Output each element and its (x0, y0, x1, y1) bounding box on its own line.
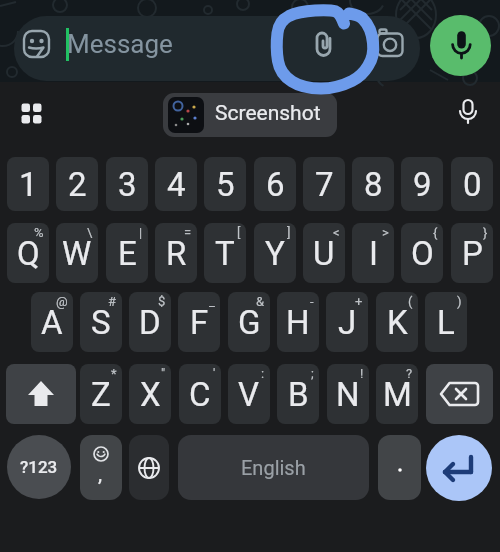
staticText: V (238, 375, 260, 414)
button[interactable]: W (56, 223, 98, 283)
staticText: : (261, 366, 265, 381)
button[interactable]: O (401, 223, 443, 283)
button[interactable]: 1 (7, 157, 49, 211)
staticText: E (118, 234, 137, 273)
button[interactable]: 0 (451, 157, 493, 211)
button[interactable]: V (228, 364, 270, 424)
staticText: X (140, 375, 161, 414)
staticText: U (313, 234, 335, 273)
button[interactable]: T (204, 223, 246, 283)
staticText: 1 (19, 165, 38, 204)
button[interactable] (453, 97, 483, 127)
button[interactable]: 3 (106, 157, 148, 211)
staticText: R (166, 234, 187, 273)
button[interactable] (129, 435, 169, 500)
staticText: 4 (167, 165, 186, 204)
staticText: English (241, 456, 306, 479)
staticText: ?123 (20, 457, 58, 477)
staticText: W (62, 234, 92, 273)
button[interactable]: I (352, 223, 394, 283)
staticText: , (98, 462, 103, 487)
staticText: { (433, 225, 438, 240)
staticText: I (369, 234, 378, 273)
button[interactable]: 4 (155, 157, 197, 211)
button[interactable]: Q (7, 223, 49, 283)
button[interactable]: , (80, 435, 122, 500)
staticText: Q (17, 234, 40, 273)
staticText: _ (209, 294, 215, 309)
staticText: & (256, 294, 265, 309)
staticText: 5 (216, 165, 235, 204)
button[interactable] (16, 98, 46, 128)
staticText: ; (311, 366, 314, 381)
button[interactable]: M (376, 364, 418, 424)
staticText: G (238, 303, 261, 342)
staticText: 8 (364, 165, 383, 204)
button[interactable]: 7 (303, 157, 345, 211)
staticText: Message (67, 29, 173, 59)
button[interactable]: English (178, 435, 369, 500)
button[interactable]: X (129, 364, 171, 424)
button[interactable]: S (80, 292, 122, 352)
button[interactable]: ?123 (7, 435, 71, 499)
button[interactable]: Y (254, 223, 296, 283)
staticText: H (286, 303, 310, 342)
staticText: ' (213, 366, 216, 381)
button[interactable]: H (277, 292, 319, 352)
button[interactable]: P (451, 223, 493, 283)
button[interactable]: L (425, 292, 467, 352)
button[interactable]: G (228, 292, 270, 352)
button[interactable] (426, 435, 492, 501)
staticText: 3 (118, 165, 137, 204)
button[interactable] (430, 15, 491, 76)
button[interactable]: 8 (352, 157, 394, 211)
button[interactable]: 2 (56, 157, 98, 211)
staticText: < (333, 225, 340, 240)
staticText: $ (158, 294, 166, 309)
staticText: 6 (266, 165, 285, 204)
staticText: | (139, 225, 143, 240)
button[interactable]: Z (80, 364, 122, 424)
button[interactable] (14, 16, 420, 81)
staticText: Y (265, 234, 285, 273)
button[interactable] (426, 364, 493, 424)
staticText: * (111, 366, 117, 381)
staticText: = (184, 225, 192, 240)
staticText: Screenshot (215, 101, 321, 126)
staticText: \ (87, 225, 93, 240)
button[interactable] (378, 435, 421, 500)
button[interactable]: B (277, 364, 319, 424)
button[interactable]: J (326, 292, 368, 352)
staticText: @ (56, 294, 68, 309)
staticText: # (108, 294, 117, 309)
staticText: ? (406, 366, 413, 381)
staticText: A (41, 303, 63, 342)
button[interactable]: E (106, 223, 148, 283)
button[interactable]: 6 (254, 157, 296, 211)
staticText: F (190, 303, 209, 342)
button[interactable]: 5 (204, 157, 246, 211)
button[interactable]: F (178, 292, 220, 352)
staticText: ! (360, 366, 364, 381)
button[interactable]: D (129, 292, 171, 352)
button[interactable]: C (179, 364, 221, 424)
staticText: } (483, 225, 488, 240)
staticText: 7 (315, 165, 334, 204)
button[interactable]: K (376, 292, 418, 352)
button[interactable]: 9 (401, 157, 443, 211)
staticText: L (437, 303, 455, 342)
button[interactable] (6, 364, 76, 424)
button[interactable]: N (327, 364, 369, 424)
staticText: D (139, 303, 161, 342)
button[interactable]: U (303, 223, 345, 283)
staticText: + (355, 294, 363, 309)
staticText: N (336, 375, 360, 414)
staticText: Z (91, 375, 111, 414)
staticText: > (382, 225, 389, 240)
staticText: K (387, 303, 408, 342)
staticText: % (34, 225, 44, 240)
staticText: ) (457, 294, 462, 309)
button[interactable]: R (155, 223, 197, 283)
button[interactable]: A (31, 292, 73, 352)
button[interactable]: Screenshot (163, 93, 337, 137)
